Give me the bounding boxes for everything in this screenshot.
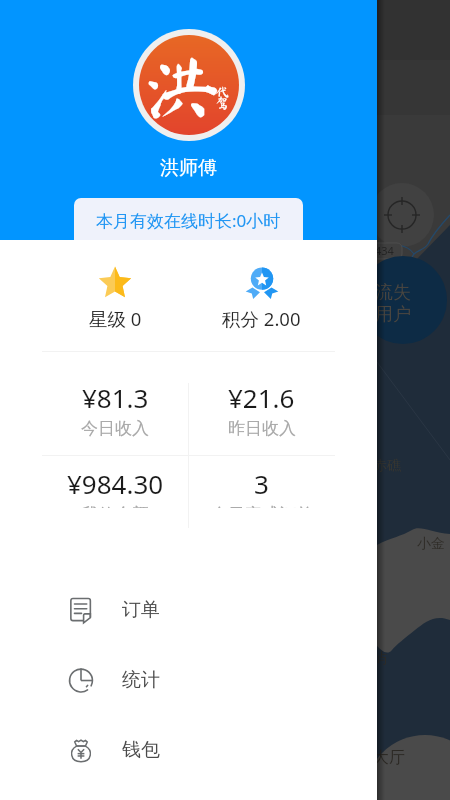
button[interactable]: ¥21.6 — [188, 352, 335, 466]
button[interactable]: 订单 — [0, 575, 377, 645]
button[interactable]: ¥81.3 — [42, 352, 188, 466]
staticText: 驾 — [215, 96, 229, 110]
staticText: 流失 — [375, 281, 411, 304]
button[interactable]: 钱包 — [0, 715, 377, 785]
staticText: 昨日收入 — [228, 418, 296, 439]
button[interactable]: 星级 0 — [42, 240, 188, 352]
staticText: 屿 — [373, 650, 387, 668]
staticText: 434 — [375, 243, 394, 258]
staticText: 积分 2.00 — [222, 306, 301, 331]
staticText: 统计 — [122, 668, 160, 692]
button[interactable]: 统计 — [0, 645, 377, 715]
staticText: ¥21.6 — [228, 380, 295, 415]
staticText: 钱包 — [122, 738, 160, 762]
staticText: ¥81.3 — [82, 380, 149, 415]
staticText: 今日完成订单 — [211, 504, 313, 508]
staticText: 我的余额 — [81, 504, 149, 508]
button[interactable]: 本月有效在线时长:0小时 — [74, 198, 303, 240]
staticText: 用户 — [375, 303, 411, 326]
staticText: 大厅 — [373, 748, 405, 768]
staticText: 订单 — [122, 598, 160, 622]
staticText: 星级 0 — [89, 306, 142, 331]
staticText: 本月有效在线时长:0小时 — [96, 209, 281, 232]
button[interactable]: 3 — [188, 466, 335, 508]
other: 统计 — [68, 667, 94, 693]
staticText: 赤礁 — [373, 457, 401, 475]
staticText: 代 — [215, 85, 229, 99]
staticText: 小金 — [417, 535, 445, 553]
other: 钱包 — [68, 737, 94, 763]
staticText: 3 — [254, 466, 269, 501]
button[interactable]: ¥984.30 — [42, 466, 188, 508]
staticText: ¥984.30 — [67, 466, 164, 501]
staticText: 今日收入 — [81, 418, 149, 439]
staticText: 洪师傅 — [160, 156, 217, 180]
button[interactable]: 积分 2.00 — [188, 240, 335, 352]
other: 订单 — [68, 597, 94, 623]
staticText: 洪 — [146, 49, 220, 123]
